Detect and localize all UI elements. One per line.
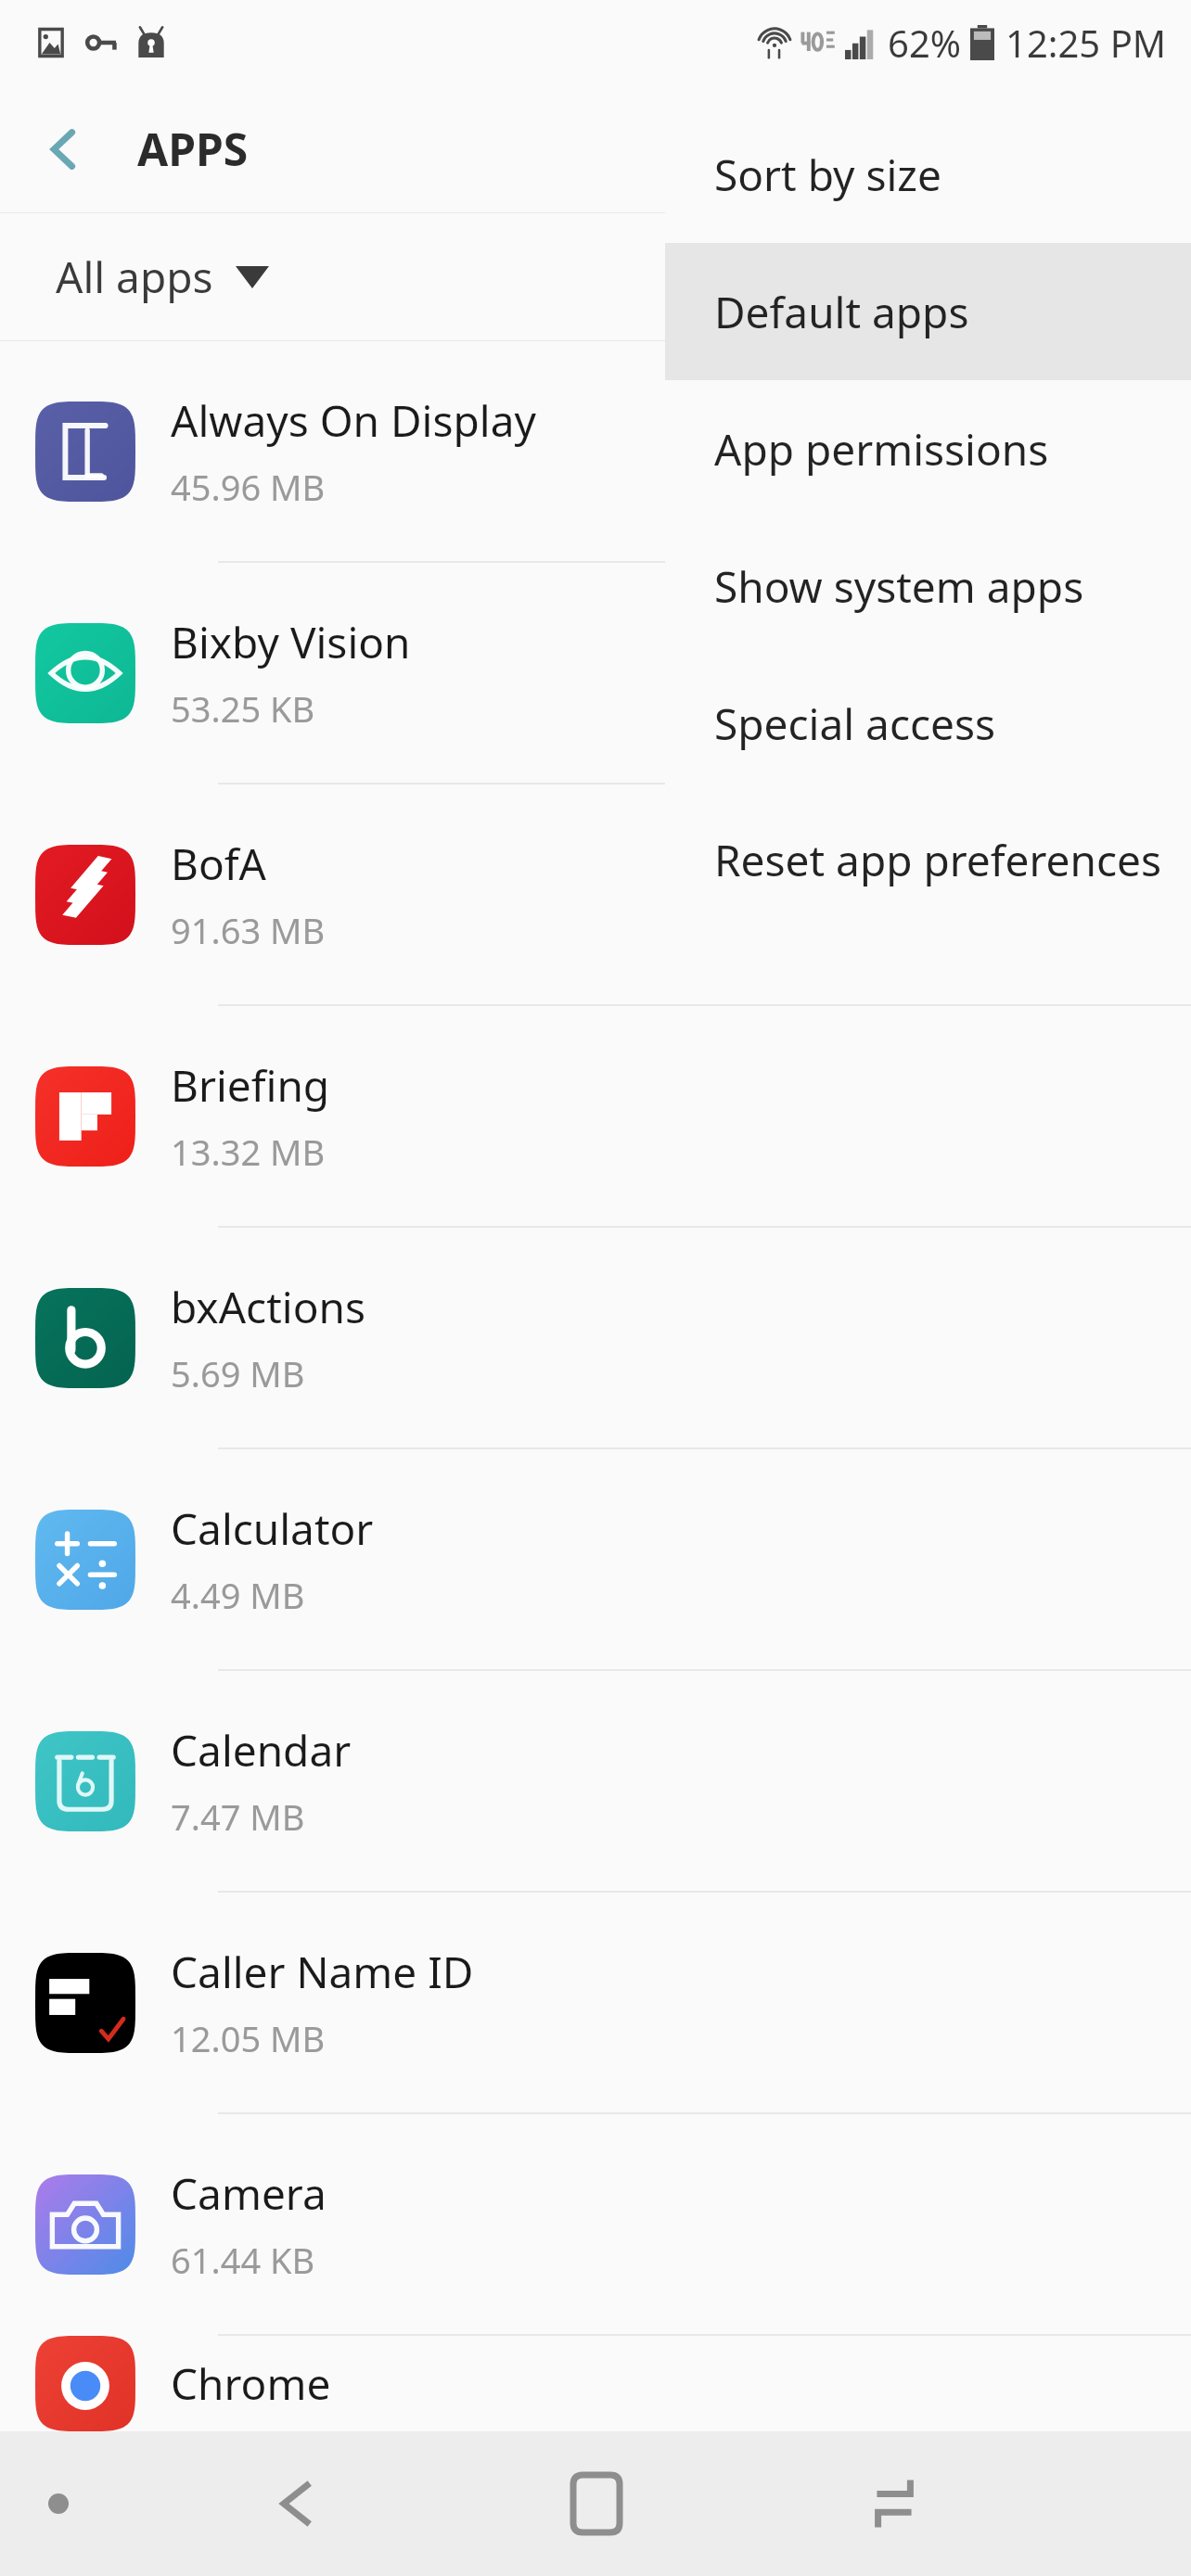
staticText: Calendar <box>171 1721 352 1779</box>
staticText: All apps <box>56 248 213 306</box>
staticText: Special access <box>714 695 996 753</box>
button[interactable]: Chrome <box>0 2336 1191 2431</box>
staticText: 12:25 PM <box>1005 18 1167 68</box>
staticText: 45.96 MB <box>171 463 326 511</box>
staticText: APPS <box>137 119 249 179</box>
button[interactable]: BofA <box>0 784 1191 1004</box>
staticText: 61.44 KB <box>171 2236 315 2284</box>
staticText: 91.63 MB <box>171 906 326 954</box>
button[interactable]: Sort by size <box>665 106 1191 243</box>
button[interactable]: Calculator <box>0 1449 1191 1669</box>
button[interactable]: Show system apps <box>665 517 1191 655</box>
staticText: Default apps <box>714 283 969 341</box>
button[interactable]: bxActions <box>0 1228 1191 1447</box>
staticText: bxActions <box>171 1278 365 1336</box>
staticText: 12.05 MB <box>171 2014 326 2062</box>
button[interactable]: Always On Display <box>0 341 1191 561</box>
button[interactable]: Briefing <box>0 1006 1191 1226</box>
button[interactable]: App permissions <box>665 380 1191 517</box>
staticText: Bixby Vision <box>171 613 411 671</box>
staticText: 62% <box>888 18 961 68</box>
staticText: 7.47 MB <box>171 1792 305 1841</box>
button[interactable]: Recents <box>745 2431 1043 2576</box>
staticText: Show system apps <box>714 557 1084 616</box>
button[interactable]: Default apps <box>665 243 1191 380</box>
staticText: 5.69 MB <box>171 1349 305 1397</box>
staticText: 53.25 KB <box>171 684 315 733</box>
button[interactable]: Camera <box>0 2114 1191 2334</box>
button[interactable]: Back <box>19 104 109 195</box>
staticText: BofA <box>171 835 266 893</box>
staticText: Sort by size <box>714 146 941 204</box>
staticText: Reset app preferences <box>714 831 1162 889</box>
staticText: 4.49 MB <box>171 1571 305 1619</box>
staticText: Camera <box>171 2164 327 2223</box>
staticText: Chrome <box>171 2354 331 2413</box>
staticText: App permissions <box>714 420 1049 478</box>
button[interactable]: Back <box>148 2431 447 2576</box>
staticText: Always On Display <box>171 391 536 450</box>
staticText: Briefing <box>171 1056 330 1115</box>
button[interactable]: Home <box>447 2431 745 2576</box>
staticText: 13.32 MB <box>171 1128 326 1176</box>
button[interactable]: Bixby Vision <box>0 563 1191 783</box>
button[interactable]: Reset app preferences <box>665 792 1191 927</box>
button[interactable]: All apps <box>37 233 288 321</box>
button[interactable]: Special access <box>665 655 1191 792</box>
staticText: Calculator <box>171 1499 374 1558</box>
button[interactable]: Caller Name ID <box>0 1893 1191 2112</box>
button[interactable]: Calendar <box>0 1671 1191 1891</box>
staticText: Caller Name ID <box>171 1943 474 2001</box>
